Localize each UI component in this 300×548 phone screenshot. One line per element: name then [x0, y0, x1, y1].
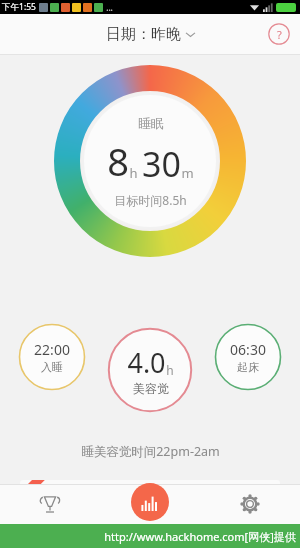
button[interactable]: Sleep statistics [131, 483, 169, 521]
staticText: 正常 [50, 520, 76, 536]
staticText: 起床 [237, 360, 259, 374]
button[interactable]: Settings [200, 484, 300, 524]
staticText: h [129, 164, 138, 182]
button[interactable]: 06:30 [214, 323, 282, 391]
staticText: 起床时间 [212, 491, 262, 507]
staticText: 美容觉 [133, 381, 169, 396]
staticText: 日期：昨晚 [106, 25, 181, 44]
button[interactable]: Help [268, 23, 290, 45]
button[interactable]: 起床时间 [193, 480, 280, 518]
staticText: 下午1:55 [2, 1, 36, 13]
staticText: ? [277, 27, 282, 42]
staticText: 06:30 [230, 340, 266, 359]
staticText: 22:00 [34, 340, 70, 359]
staticText: 4.0 [127, 344, 166, 381]
button[interactable]: 入睡时间 [20, 480, 106, 518]
staticText: 目标时间8.5h [114, 192, 187, 208]
button[interactable]: 日期：昨晚 [106, 25, 195, 44]
staticText: 入睡 [41, 360, 63, 374]
staticText: 入睡时间 [38, 491, 88, 507]
staticText: h [166, 362, 174, 378]
staticText: ... [106, 2, 113, 13]
staticText: 睡眠 [138, 115, 164, 131]
staticText: 起床早 [217, 520, 256, 536]
staticText: m [181, 164, 194, 182]
staticText: 8 [107, 135, 129, 187]
staticText: 睡眠时长 [125, 491, 175, 507]
button[interactable]: 4.0 [107, 327, 193, 413]
staticText: 30 [142, 141, 181, 187]
staticText: 睡美容觉时间22pm-2am [81, 443, 220, 460]
button[interactable]: 睡眠时长 [106, 480, 193, 518]
staticText: http://www.hackhome.com[网侠]提供 [104, 529, 296, 544]
button[interactable]: Achievements [0, 484, 100, 524]
button[interactable]: 22:00 [18, 323, 86, 391]
